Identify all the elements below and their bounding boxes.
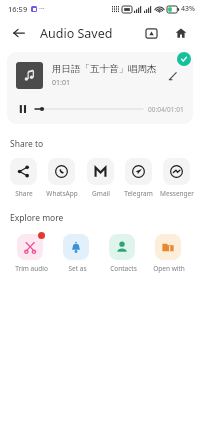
staticText: 16:59 [8,4,28,14]
button[interactable]: Messenger [159,158,194,198]
button[interactable]: WhatsApp [44,158,79,198]
staticText: 43% [181,4,195,14]
staticText: Audio Saved [40,25,113,42]
button[interactable]: Gmail [83,158,118,198]
staticText: Telegram [124,189,153,198]
staticText: Share to [10,138,44,150]
button[interactable]: Rename [164,67,182,85]
staticText: Contacts [110,264,137,273]
staticText: 用日語「五十音」唱周杰倫... [52,63,160,75]
button[interactable]: 用日語「五十音」唱周杰倫... [7,52,193,124]
button[interactable]: Home [170,22,192,44]
staticText: Set as [68,264,87,273]
button[interactable]: Trim audio [8,232,54,273]
staticText: ··· [39,4,45,14]
button[interactable]: Back [8,22,30,44]
staticText: Trim audio [15,264,48,273]
staticText: 00:04/01:01 [148,105,184,114]
staticText: 01:01 [52,78,70,88]
staticText: WhatsApp [46,189,78,198]
button[interactable]: Save to gallery [140,22,162,44]
staticText: Gmail [92,189,110,198]
button[interactable]: Pause [16,102,30,116]
button[interactable]: Contacts [100,232,146,273]
staticText: Explore more [10,212,64,224]
staticText: Share [15,189,33,198]
button[interactable]: Share [6,158,41,198]
staticText: Open with [153,264,185,273]
button[interactable]: Set as [54,232,100,273]
button[interactable]: Open with [146,232,192,273]
button[interactable]: Telegram [121,158,156,198]
staticText: Messenger [160,189,194,198]
